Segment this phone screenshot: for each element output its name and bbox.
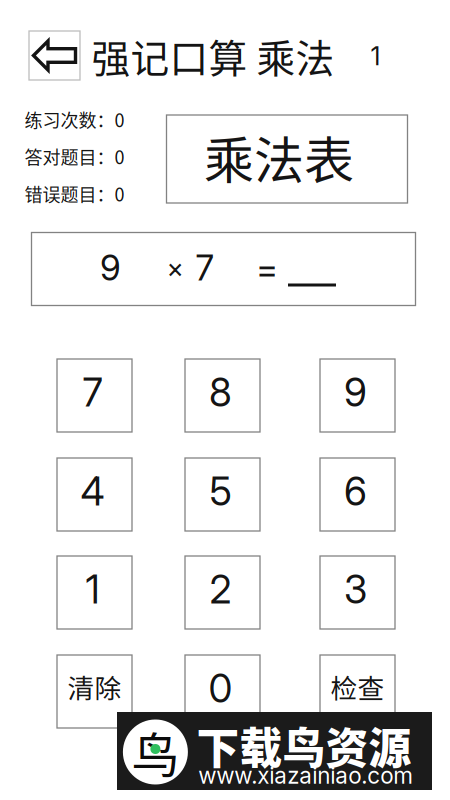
- staticText: ×: [166, 252, 183, 284]
- button[interactable]: 0: [185, 655, 260, 728]
- staticText: 3: [344, 566, 367, 613]
- staticText: 1: [370, 41, 380, 71]
- staticText: 练习次数：0: [24, 106, 124, 132]
- staticText: 5: [209, 468, 231, 515]
- button[interactable]: 3: [320, 556, 395, 629]
- staticText: 8: [209, 369, 232, 416]
- button[interactable]: 5: [185, 458, 260, 531]
- staticText: 答对题目：0: [24, 143, 124, 170]
- staticText: 下载鸟资源: [196, 715, 411, 776]
- staticText: 9: [100, 247, 121, 289]
- staticText: 0: [208, 665, 232, 712]
- staticText: =: [256, 248, 278, 290]
- staticText: www.xiazainiao.com: [198, 762, 413, 789]
- button[interactable]: 9: [320, 359, 395, 432]
- button[interactable]: 清除: [57, 655, 132, 728]
- button[interactable]: 4: [57, 458, 132, 531]
- button[interactable]: 7: [57, 359, 132, 432]
- staticText: 1: [85, 566, 99, 613]
- button[interactable]: 检查: [320, 655, 395, 728]
- button[interactable]: Back: [29, 31, 80, 80]
- button[interactable]: 6: [320, 458, 395, 531]
- button[interactable]: 1: [57, 556, 132, 629]
- staticText: 乘法表: [204, 121, 354, 193]
- staticText: 4: [80, 468, 104, 515]
- button[interactable]: 乘法表: [166, 115, 407, 203]
- staticText: 强记口算 乘法: [91, 28, 334, 84]
- button[interactable]: 8: [185, 359, 260, 432]
- button[interactable]: 2: [185, 556, 260, 629]
- staticText: 错误题目：0: [24, 180, 124, 207]
- staticText: 检查: [330, 667, 384, 706]
- staticText: 9: [344, 369, 367, 416]
- staticText: 2: [209, 566, 231, 613]
- staticText: 7: [82, 369, 102, 416]
- staticText: 6: [344, 468, 367, 515]
- staticText: 7: [195, 247, 213, 289]
- staticText: 清除: [67, 667, 121, 706]
- staticText: 鸟: [131, 717, 179, 787]
